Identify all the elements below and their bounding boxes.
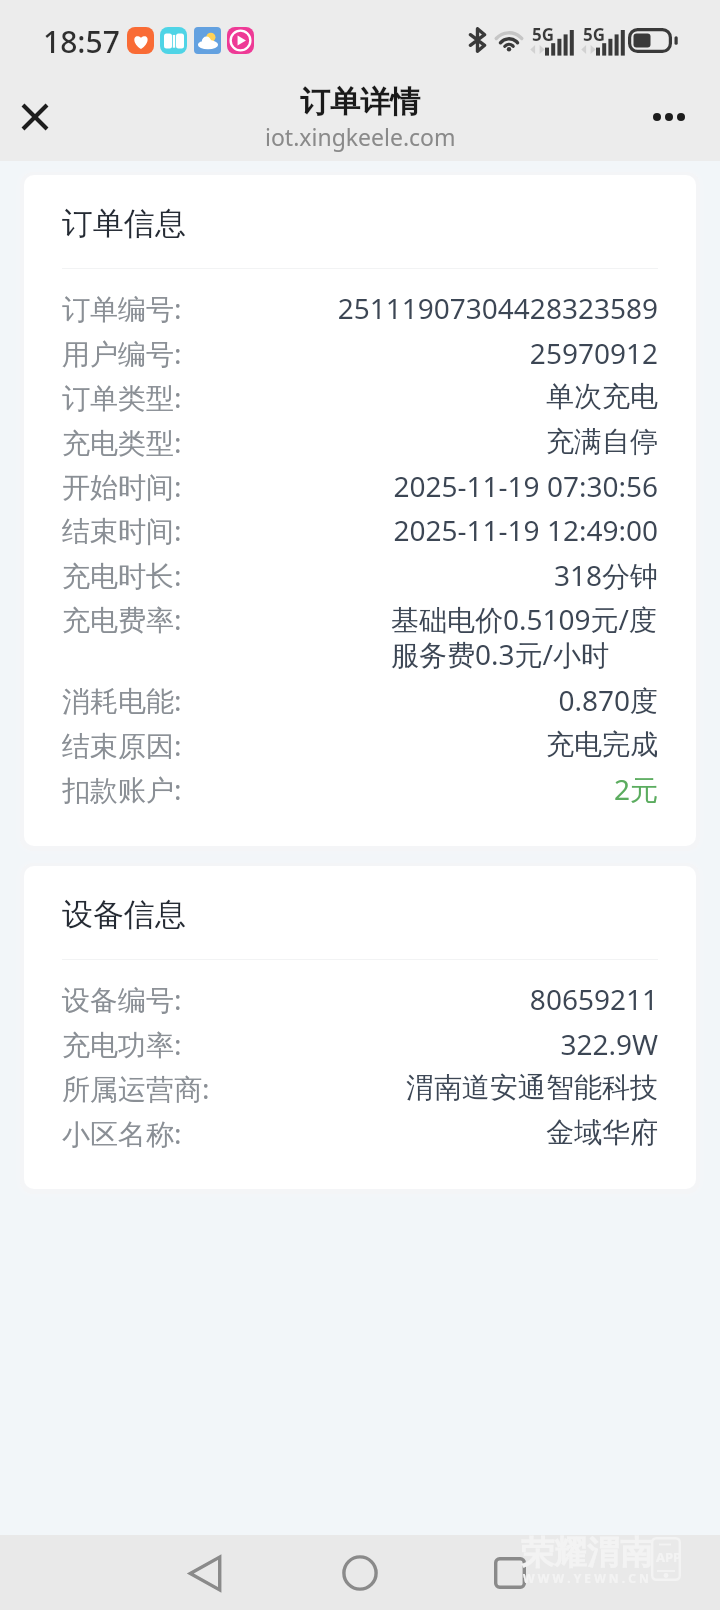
staticText: 充电时长: <box>62 559 182 594</box>
staticText: 25970912 <box>529 337 658 371</box>
staticText: 322.9W <box>560 1028 658 1062</box>
staticText: 318分钟 <box>553 559 658 594</box>
button[interactable]: Recents <box>475 1538 545 1608</box>
staticText: 结束原因: <box>62 729 182 764</box>
staticText: 25111907304428323589 <box>337 292 658 326</box>
staticText: 设备编号: <box>62 983 182 1018</box>
staticText: 5G <box>583 27 606 45</box>
staticText: 用户编号: <box>62 337 182 372</box>
staticText: 订单信息 <box>62 206 186 243</box>
staticText: 2025-11-19 12:49:00 <box>393 514 658 548</box>
staticText: 订单类型: <box>62 381 182 416</box>
staticText: 80659211 <box>529 983 658 1017</box>
staticText: 5G <box>532 27 555 45</box>
staticText: 扣款账户: <box>62 773 182 808</box>
button[interactable]: More options <box>645 93 693 141</box>
staticText: 订单详情 <box>300 87 420 121</box>
staticText: 荣耀渭南 <box>521 1536 653 1573</box>
staticText: W W W . Y E W N . C N <box>523 1572 649 1586</box>
staticText: 2元 <box>613 773 658 808</box>
staticText: 18:57 <box>43 27 120 60</box>
staticText: 充满自停 <box>546 426 658 460</box>
staticText: 所属运营商: <box>62 1072 210 1107</box>
staticText: 2025-11-19 07:30:56 <box>393 470 658 504</box>
staticText: 结束时间: <box>62 514 182 549</box>
staticText: APP <box>656 1550 682 1565</box>
staticText: 0.870度 <box>558 684 658 719</box>
staticText: 订单编号: <box>62 292 182 327</box>
staticText: 设备信息 <box>62 897 186 934</box>
staticText: 开始时间: <box>62 470 182 505</box>
staticText: 充电费率: <box>62 603 182 638</box>
button[interactable]: Close <box>11 93 59 141</box>
staticText: 单次充电 <box>546 381 658 415</box>
staticText: 金域华府 <box>546 1117 658 1151</box>
staticText: iot.xingkeele.com <box>265 126 456 152</box>
staticText: 消耗电能: <box>62 684 182 719</box>
staticText: 渭南道安通智能科技 <box>406 1072 658 1106</box>
staticText: 充电功率: <box>62 1028 182 1063</box>
staticText: 小区名称: <box>62 1117 182 1152</box>
staticText: 基础电价0.5109元/度 服务费0.3元/小时 <box>391 603 658 673</box>
button[interactable]: Back <box>170 1538 240 1608</box>
button[interactable]: Home <box>325 1538 395 1608</box>
staticText: 充电完成 <box>546 729 658 763</box>
staticText: 充电类型: <box>62 426 182 461</box>
